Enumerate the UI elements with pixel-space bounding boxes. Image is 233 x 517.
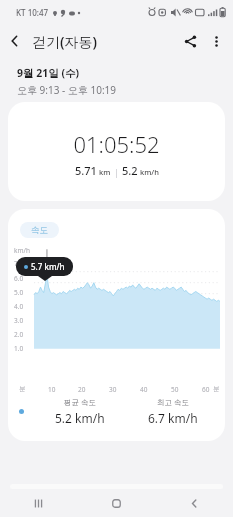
staticText: km xyxy=(99,167,111,177)
staticText: 5.71 xyxy=(75,163,97,178)
staticText: 오후 9:13 - 오후 10:19 xyxy=(17,83,117,97)
staticText: 40 xyxy=(140,385,148,394)
staticText: KT 10:47 xyxy=(16,7,49,18)
button[interactable]: 01:05:52 xyxy=(8,102,225,201)
staticText: 속도 xyxy=(31,225,48,236)
staticText: 분 xyxy=(19,385,26,393)
staticText: 평균 속도 xyxy=(64,397,96,407)
staticText: 9월 21일 (수) xyxy=(17,66,80,80)
button[interactable]: Home xyxy=(77,489,155,517)
staticText: 5.2 xyxy=(122,163,138,178)
staticText: 7.0 xyxy=(14,259,24,268)
staticText: 6.0 xyxy=(14,274,24,283)
staticText: 20 xyxy=(78,385,86,394)
button[interactable]: 5.7 km/h xyxy=(16,257,73,276)
staticText: 01:05:52 xyxy=(73,129,160,159)
staticText: 최고 속도 xyxy=(157,397,189,407)
staticText: km/h xyxy=(14,246,30,255)
staticText: km/h xyxy=(140,167,159,177)
button[interactable]: Recents xyxy=(0,489,77,517)
staticText: 5.2 km/h xyxy=(55,410,105,426)
staticText: 5.7 km/h xyxy=(31,261,65,272)
staticText: 5.0 xyxy=(14,288,24,297)
button[interactable]: 속도 xyxy=(20,222,59,238)
button[interactable]: Share xyxy=(177,28,203,54)
staticText: 1.0 xyxy=(14,344,24,353)
staticText: 분 xyxy=(213,385,220,393)
button[interactable]: 최고 속도 xyxy=(126,397,219,426)
staticText: 60 xyxy=(202,385,210,394)
staticText: 3.0 xyxy=(14,316,24,325)
staticText: 2.0 xyxy=(14,330,24,339)
button[interactable]: Back xyxy=(155,489,233,517)
staticText: 10 xyxy=(48,385,56,394)
staticText: 4.0 xyxy=(14,302,24,311)
staticText: 30 xyxy=(109,385,117,394)
staticText: 50 xyxy=(171,385,179,394)
button[interactable]: More options xyxy=(203,28,229,54)
button[interactable]: Back xyxy=(0,26,30,56)
button[interactable]: 평균 속도 xyxy=(34,397,126,426)
staticText: 6.7 km/h xyxy=(148,410,198,426)
staticText: 걷기(자동) xyxy=(32,32,98,51)
